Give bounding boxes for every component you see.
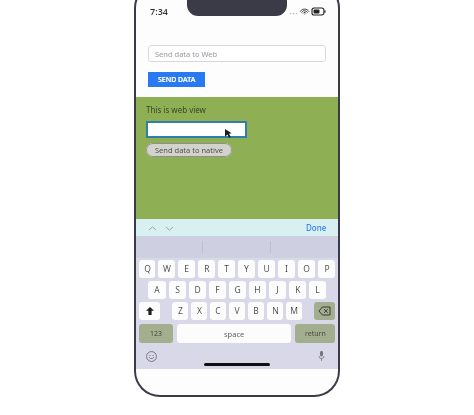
button[interactable]: T <box>218 260 235 278</box>
staticText: I <box>285 263 288 275</box>
staticText: This is web view <box>146 104 206 115</box>
staticText: return <box>305 329 326 339</box>
button[interactable]: N <box>267 302 283 320</box>
button[interactable]: S <box>169 281 186 299</box>
button[interactable]: U <box>258 260 275 278</box>
staticText: W <box>163 263 171 275</box>
staticText: Done <box>306 222 327 233</box>
staticText: F <box>215 284 220 296</box>
button[interactable]: G <box>229 281 246 299</box>
staticText: Send data to Web <box>155 49 218 59</box>
staticText: X <box>197 305 202 317</box>
staticText: G <box>234 284 241 296</box>
button[interactable]: V <box>229 302 245 320</box>
staticText: Z <box>178 305 183 317</box>
staticText: Y <box>244 263 249 275</box>
button[interactable] <box>146 121 247 138</box>
staticText: O <box>303 263 310 275</box>
button[interactable]: W <box>158 260 175 278</box>
staticText: space <box>224 329 245 339</box>
button[interactable]: L <box>309 281 326 299</box>
button[interactable]: Send data to Web <box>148 45 326 62</box>
staticText: A <box>154 284 160 296</box>
staticText: B <box>253 305 259 317</box>
staticText: U <box>263 263 270 275</box>
button[interactable]: Previous field <box>145 221 159 235</box>
button[interactable]: return <box>295 324 335 343</box>
button[interactable]: Q <box>139 260 155 278</box>
staticText: M <box>290 305 298 317</box>
button[interactable]: X <box>191 302 207 320</box>
button[interactable]: SEND DATA <box>148 72 205 87</box>
staticText: SEND DATA <box>158 75 196 85</box>
staticText: 7:34 <box>150 5 168 17</box>
button[interactable]: D <box>189 281 206 299</box>
staticText: R <box>204 263 210 275</box>
staticText: D <box>194 284 201 296</box>
button[interactable]: Shift <box>139 302 160 320</box>
button[interactable]: space <box>177 324 291 343</box>
staticText: E <box>184 263 189 275</box>
staticText: S <box>175 284 180 296</box>
button[interactable]: 123 <box>139 324 173 343</box>
button[interactable]: P <box>318 260 335 278</box>
button[interactable]: H <box>249 281 266 299</box>
button[interactable]: B <box>248 302 264 320</box>
button[interactable]: O <box>298 260 315 278</box>
staticText: K <box>295 284 301 296</box>
staticText: H <box>254 284 261 296</box>
button[interactable]: I <box>278 260 295 278</box>
button[interactable]: K <box>289 281 306 299</box>
button[interactable]: M <box>286 302 302 320</box>
staticText: P <box>324 263 330 275</box>
button[interactable]: Delete <box>314 302 335 320</box>
button[interactable]: E <box>178 260 195 278</box>
staticText: N <box>272 305 279 317</box>
button[interactable]: Emoji <box>145 350 158 363</box>
staticText: Send data to native <box>155 145 223 155</box>
button[interactable]: Dictation <box>315 350 328 363</box>
button[interactable]: Next field <box>162 221 176 235</box>
staticText: C <box>215 305 221 317</box>
staticText: T <box>224 263 229 275</box>
button[interactable]: A <box>148 281 166 299</box>
button[interactable]: Y <box>238 260 255 278</box>
button[interactable]: C <box>210 302 226 320</box>
staticText: J <box>276 284 279 296</box>
button[interactable]: J <box>269 281 286 299</box>
staticText: Q <box>144 263 151 275</box>
button[interactable]: Send data to native <box>146 143 232 157</box>
staticText: L <box>315 284 320 296</box>
button[interactable]: Z <box>172 302 188 320</box>
button[interactable]: F <box>209 281 226 299</box>
button[interactable]: Done <box>306 222 338 233</box>
staticText: V <box>234 305 240 317</box>
button[interactable]: R <box>198 260 215 278</box>
staticText: 123 <box>150 329 163 339</box>
